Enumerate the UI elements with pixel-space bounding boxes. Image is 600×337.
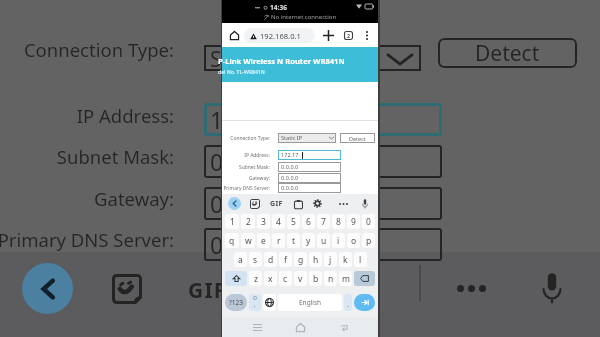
button[interactable]: 1 [225,214,239,229]
button[interactable]: 3 [257,214,270,229]
button[interactable]: i [332,233,345,248]
button[interactable]: 0 [204,145,442,178]
button[interactable]: . [344,294,352,311]
button[interactable]: w [241,233,255,248]
button[interactable]: 5 [287,214,300,229]
button[interactable]: Voice input [361,198,369,209]
button[interactable]: 6 [302,214,315,229]
button[interactable]: Clipboard [293,199,303,209]
button[interactable]: 0 [204,228,442,261]
button[interactable]: 9 [347,214,360,229]
staticText: 2 [347,32,350,39]
button[interactable]: q [225,233,239,248]
button[interactable]: , [249,294,261,311]
staticText: GIF [188,276,227,305]
staticText: m [342,273,350,285]
button[interactable]: g [294,252,307,267]
button[interactable]: Back [335,318,353,336]
staticText: 0.0.0.0 [281,174,299,182]
button[interactable]: m [339,271,352,286]
button[interactable]: u [317,233,330,248]
button[interactable]: Home [291,318,309,336]
staticText: v [298,273,303,285]
button[interactable]: v [294,271,307,286]
button[interactable]: 0.0.0.0 [278,162,341,172]
staticText: o [351,235,357,247]
button[interactable]: 7 [317,214,330,229]
button[interactable]: Detect [438,38,577,68]
button[interactable]: a [234,252,247,267]
button[interactable]: h [309,252,322,267]
button[interactable]: Stickers [112,274,142,304]
button[interactable]: c [279,271,292,286]
staticText: 192.168.0.1 [260,31,301,41]
button[interactable]: 0.0.0.0 [278,183,341,193]
button[interactable]: More options [360,28,374,42]
button[interactable]: Home [224,25,244,45]
button[interactable]: e [257,233,270,248]
staticText: a [238,254,243,266]
button[interactable]: Tabs [340,27,356,43]
staticText: t [292,235,296,247]
button[interactable]: ?123 [225,294,247,311]
button[interactable]: 1 [204,103,442,136]
button[interactable]: Language [263,294,276,311]
staticText: c [283,273,288,285]
button[interactable]: Detect [340,133,375,143]
button[interactable]: j [324,252,337,267]
staticText: 1 [210,104,224,135]
staticText: 172.17 [281,151,299,159]
button[interactable]: Recents [248,318,266,336]
button[interactable]: p [362,233,375,248]
button[interactable]: k [339,252,352,267]
button[interactable]: Static IP [278,133,336,143]
button[interactable]: Back [228,197,241,210]
button[interactable]: x [264,271,277,286]
staticText: 5 [291,216,296,228]
button[interactable]: Enter [354,294,375,311]
button[interactable]: Back [22,263,73,314]
button[interactable]: 4 [272,214,285,229]
button[interactable]: 172.17 [278,150,341,160]
staticText: Detect [349,135,366,142]
button[interactable]: d [264,252,277,267]
button[interactable]: s [249,252,262,267]
staticText: English [299,298,322,307]
button[interactable]: l [354,252,367,267]
button[interactable]: y [302,233,315,248]
button[interactable]: 8 [332,214,345,229]
staticText: . [347,300,349,309]
button[interactable]: Backspace [354,271,375,286]
button[interactable]: 0.0.0.0 [278,173,341,183]
button[interactable]: New tab [320,27,336,43]
staticText: Gateway: [214,175,270,182]
button[interactable]: English [278,294,342,311]
staticText: 1 [230,216,235,228]
button[interactable]: Settings [312,198,323,209]
button[interactable]: S [204,45,421,71]
button[interactable]: 2 [241,214,255,229]
staticText: 6 [306,216,311,228]
button[interactable]: 192.168.0.1 [244,28,315,43]
button[interactable]: z [249,271,262,286]
staticText: 0.0.0.0 [281,163,299,171]
staticText: IP Address: [214,152,270,159]
button[interactable]: Voice input [538,269,566,305]
button[interactable]: r [272,233,285,248]
button[interactable]: b [309,271,322,286]
button[interactable]: More [339,203,348,205]
button[interactable]: f [279,252,292,267]
button[interactable]: o [347,233,360,248]
button[interactable]: Shift [225,271,247,286]
staticText: w [245,235,252,247]
staticText: 0.0.0.0 [281,184,299,192]
staticText: 7 [321,216,326,228]
button[interactable]: t [287,233,300,248]
staticText: l [359,254,362,266]
button[interactable]: 0 [204,187,442,220]
staticText: 9 [351,216,356,228]
button[interactable]: 0 [362,214,375,229]
button[interactable]: n [324,271,337,286]
button[interactable]: Stickers [250,199,260,209]
staticText: b [313,273,319,285]
